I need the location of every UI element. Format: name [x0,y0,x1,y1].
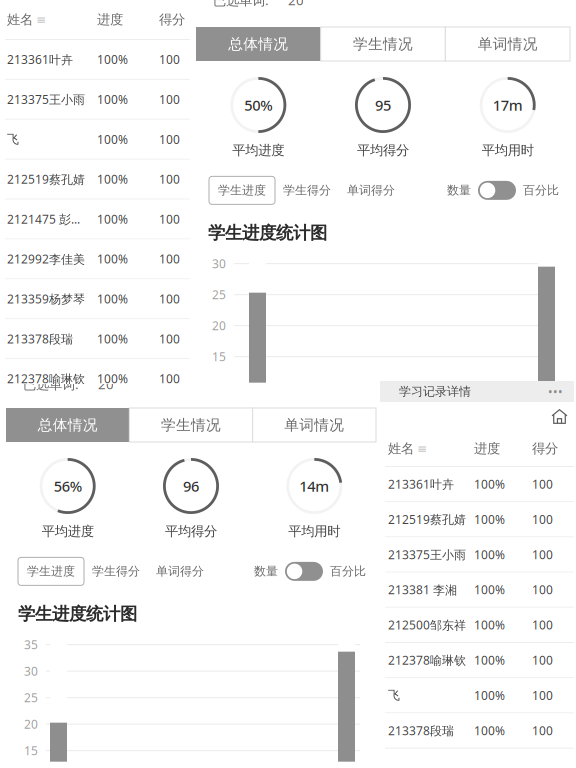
staticText: 212519蔡孔婧 [7,171,85,187]
button[interactable]: 单词情况 [445,27,570,61]
staticText: 14m [299,476,329,496]
button[interactable]: 学生情况 [321,27,445,61]
staticText: 25 [212,287,226,303]
staticText: 30 [24,663,38,679]
staticText: 姓名 [7,11,33,28]
staticText: 100% [474,511,505,527]
staticText: 学生情况 [161,416,221,434]
staticText: 总体情况 [228,35,288,53]
staticText: 100 [532,546,553,562]
staticText: ≡ [36,13,46,26]
staticText: 百分比 [330,564,366,579]
staticText: 25 [24,690,38,706]
button[interactable]: 213378段瑞 [0,319,190,359]
staticText: 学生情况 [353,35,413,53]
staticText: 已选单词: [23,375,79,393]
button[interactable]: 213375王小雨 [380,537,574,573]
staticText: 100 [532,511,553,527]
staticText: 100 [159,251,180,267]
staticText: 100 [532,722,553,738]
staticText: 96 [183,476,199,496]
staticText: 100% [474,617,505,633]
staticText: 20 [24,716,38,732]
staticText: 数量 [254,564,278,579]
button[interactable]: 数量或百分比切换 [478,181,516,200]
staticText: 212378喻琳钦 [388,652,466,668]
staticText: 100% [97,171,128,187]
button[interactable]: 单词情况 [253,408,376,442]
staticText: 数量 [447,183,471,198]
button[interactable]: 学生得分 [275,176,339,204]
staticText: 212378喻琳钦 [7,371,85,387]
staticText: 100 [159,171,180,187]
button[interactable]: 总体情况 [196,27,321,61]
staticText: 百分比 [523,183,559,198]
staticText: 学生进度统计图 [208,222,327,244]
staticText: 100% [474,476,505,492]
staticText: 100 [532,687,553,703]
button[interactable]: 213361叶卉 [0,40,190,80]
button[interactable]: 飞 [0,120,190,160]
button[interactable]: 更多 [548,383,563,399]
staticText: 20 [212,318,226,334]
staticText: 飞 [388,688,400,703]
button[interactable]: 213378段瑞 [380,713,574,749]
staticText: 100% [97,51,128,67]
staticText: 平均得分 [357,142,409,158]
staticText: 30 [212,256,226,272]
staticText: 213361叶卉 [388,476,454,492]
staticText: 100 [532,476,553,492]
staticText: 100% [97,211,128,227]
staticText: 100% [474,687,505,703]
button[interactable]: 2121475 彭... [0,200,190,239]
staticText: 100 [159,371,180,387]
staticText: 学生进度统计图 [18,603,137,625]
button[interactable]: 单词得分 [148,557,212,585]
staticText: 20 [288,0,304,9]
staticText: 35 [24,637,38,653]
button[interactable]: 总体情况 [6,408,129,442]
staticText: 100 [532,582,553,598]
button[interactable]: 213361叶卉 [380,467,574,502]
staticText: 进度 [474,440,500,457]
button[interactable]: 学生得分 [84,557,148,585]
button[interactable]: 213381 李湘 [380,573,574,608]
button[interactable]: 212519蔡孔婧 [0,160,190,200]
staticText: 总体情况 [38,416,98,434]
staticText: 213375王小雨 [388,546,466,562]
staticText: 平均用时 [482,142,534,158]
button[interactable]: 首页 [551,408,568,425]
staticText: 100% [97,371,128,387]
staticText: 100 [159,331,180,347]
staticText: 213378段瑞 [7,331,73,347]
staticText: 95 [375,95,391,115]
button[interactable]: 212378喻琳钦 [380,643,574,678]
button[interactable]: 单词得分 [339,176,403,204]
staticText: 213375王小雨 [7,91,85,107]
staticText: 212519蔡孔婧 [388,511,466,527]
button[interactable]: 数量或百分比切换 [285,562,323,581]
staticText: 17m [493,95,523,115]
button[interactable]: 学生进度 [18,557,84,585]
button[interactable]: 212378喻琳钦 [0,359,190,399]
staticText: 飞 [7,132,19,147]
button[interactable]: 213375王小雨 [0,80,190,120]
staticText: 100% [474,582,505,598]
staticText: 213361叶卉 [7,51,73,67]
staticText: 56% [54,476,82,496]
staticText: 得分 [159,11,185,28]
staticText: 213381 李湘 [388,582,457,598]
staticText: 姓名 [388,440,414,457]
staticText: 212992李佳美 [7,251,85,267]
button[interactable]: 212992李佳美 [0,239,190,279]
button[interactable]: 212519蔡孔婧 [380,502,574,537]
staticText: 学生得分 [92,564,140,579]
button[interactable]: 学生情况 [129,408,253,442]
button[interactable]: 213359杨梦琴 [0,279,190,319]
staticText: 已选单词: [213,0,269,9]
staticText: ••• [548,383,563,399]
button[interactable]: 学生进度 [209,176,275,204]
staticText: 15 [212,349,226,365]
button[interactable]: 212500邹东祥 [380,608,574,643]
button[interactable]: 飞 [380,678,574,713]
